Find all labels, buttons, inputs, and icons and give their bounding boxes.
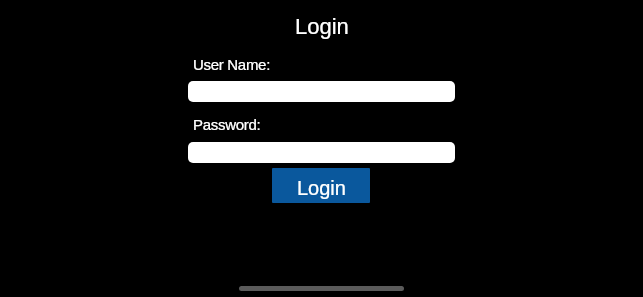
button[interactable]: Login (272, 168, 370, 203)
button[interactable] (188, 142, 455, 163)
staticText: User Name: (193, 56, 271, 73)
button[interactable] (188, 81, 455, 102)
staticText: Login (295, 14, 349, 39)
staticText: Password: (193, 116, 261, 133)
staticText: Login (297, 177, 346, 199)
